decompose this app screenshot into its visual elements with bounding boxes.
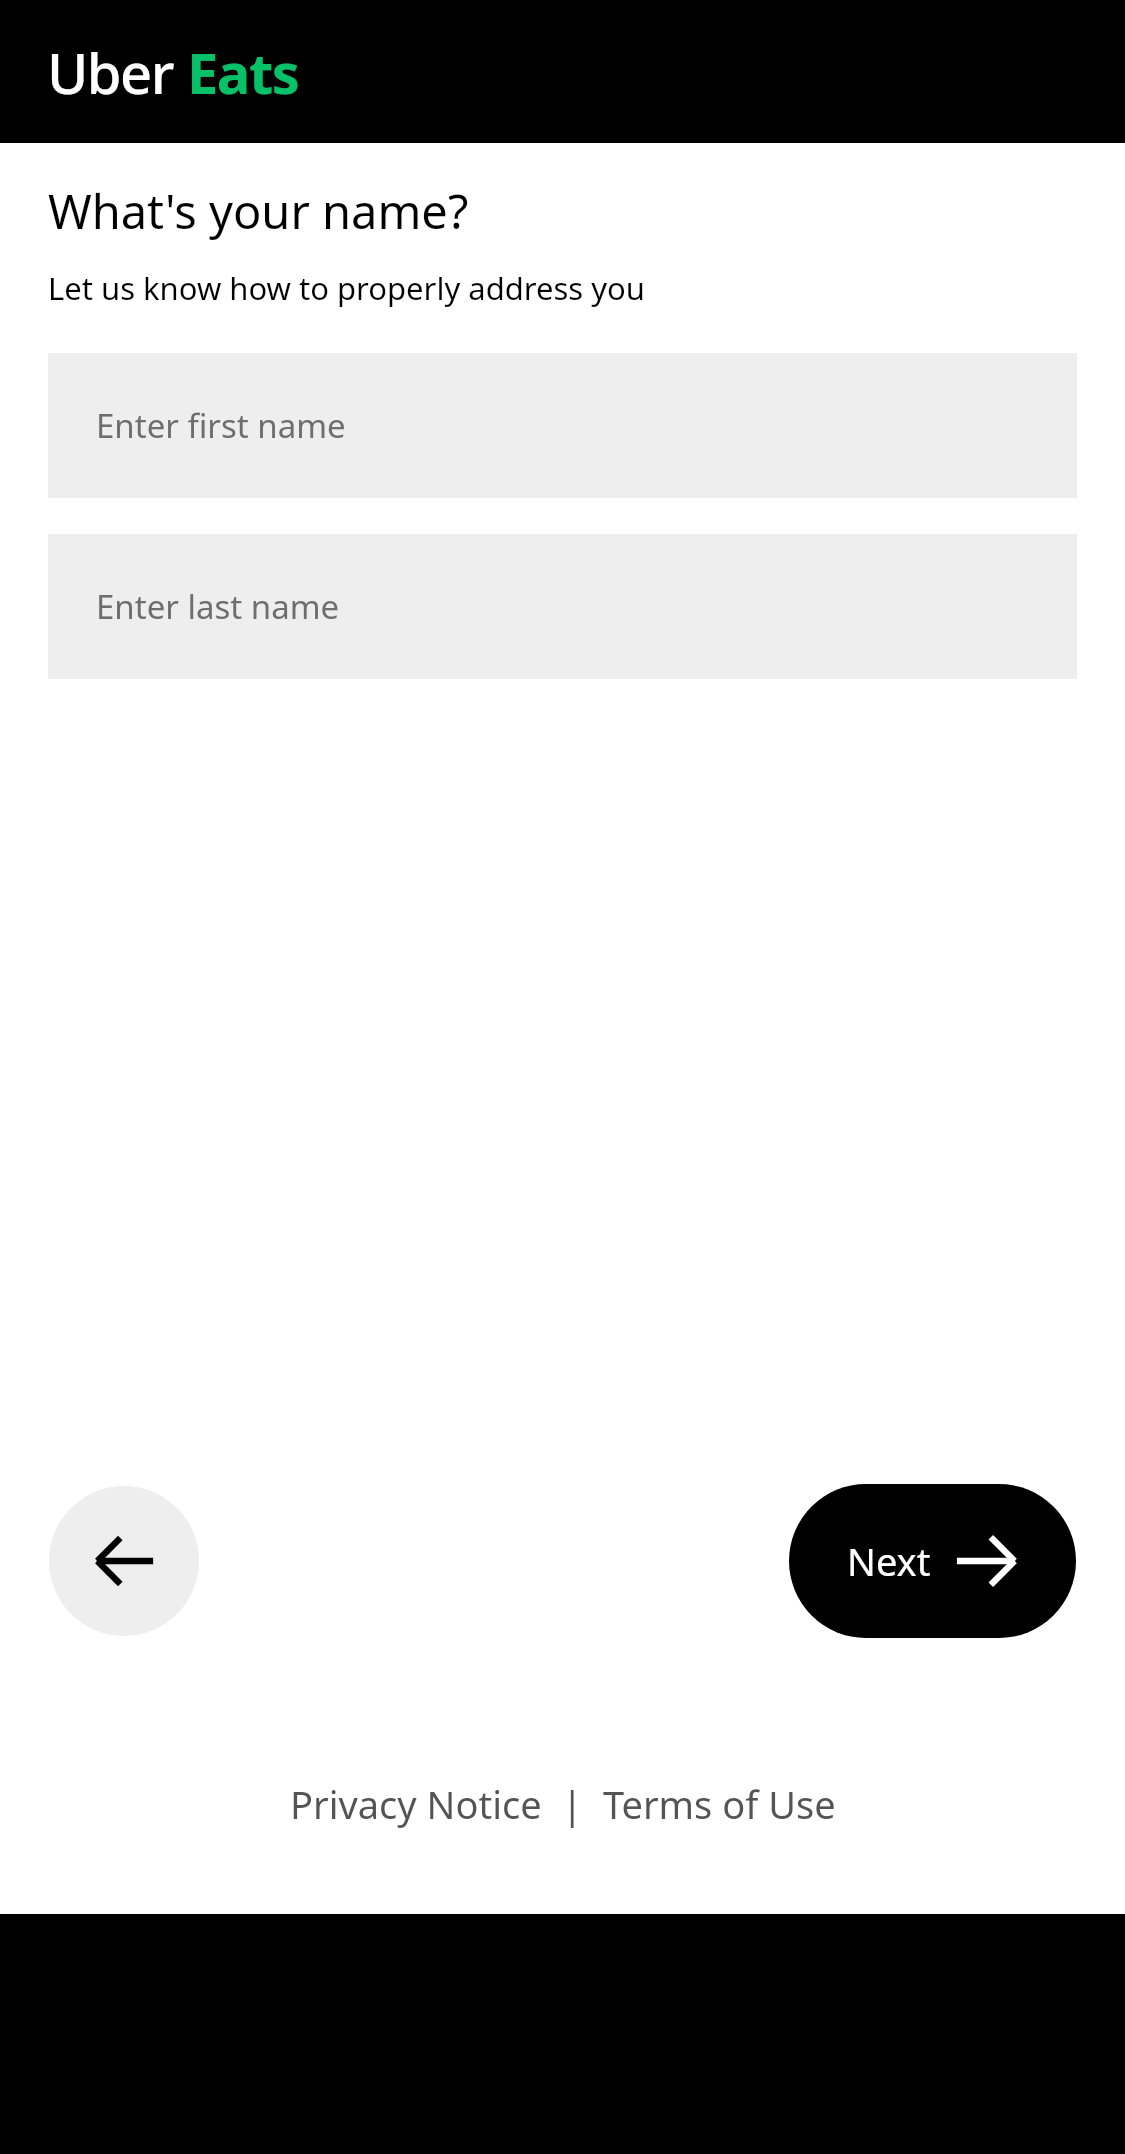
staticText: What's your name? xyxy=(48,179,469,243)
staticText: | xyxy=(542,1778,603,1830)
staticText: Enter last name xyxy=(96,584,340,629)
button[interactable]: Back xyxy=(49,1486,199,1636)
button[interactable]: Enter first name xyxy=(48,353,1077,498)
button[interactable]: Next xyxy=(789,1484,1076,1638)
button[interactable]: Terms of Use xyxy=(603,1778,836,1830)
staticText: Next xyxy=(847,1535,931,1587)
button[interactable]: Privacy Notice xyxy=(290,1778,542,1830)
staticText: Uber xyxy=(47,34,173,110)
staticText: Eats xyxy=(187,34,299,110)
button[interactable]: Enter last name xyxy=(48,534,1077,679)
staticText: Let us know how to properly address you xyxy=(48,267,645,309)
staticText: Enter first name xyxy=(96,403,346,448)
